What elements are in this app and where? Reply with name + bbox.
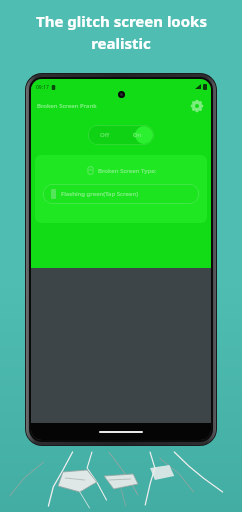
staticText: realistic — [91, 33, 151, 53]
staticText: Flashing green(Tap Screen) — [61, 190, 139, 198]
staticText: Broken Screen Prank — [37, 102, 97, 110]
button[interactable]: Settings — [189, 98, 205, 114]
staticText: On — [133, 131, 142, 139]
button[interactable]: Flashing green(Tap Screen) — [43, 184, 199, 204]
staticText: Broken Screen Type: — [98, 167, 157, 175]
button[interactable]: Off — [88, 125, 154, 145]
staticText: 09:17 — [36, 84, 49, 91]
staticText: Off — [100, 131, 109, 139]
staticText: The glitch screen looks — [36, 11, 207, 31]
